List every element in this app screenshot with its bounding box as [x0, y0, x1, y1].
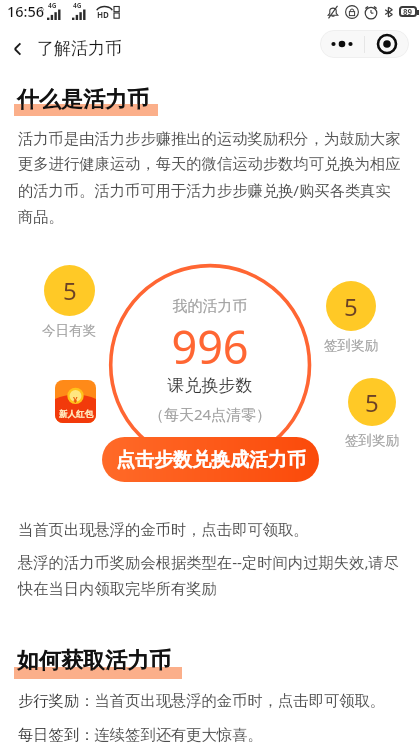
staticText: 我的活力币 — [0, 297, 420, 316]
staticText: 点击步数兑换成活力币 — [116, 448, 306, 472]
staticText: 4G — [73, 1, 82, 10]
staticText: 5 — [365, 386, 379, 419]
button[interactable]: 5 — [44, 265, 95, 316]
other: Back — [8, 39, 28, 59]
staticText: 16:56 — [7, 1, 45, 21]
staticText: （每天24点清零） — [0, 404, 420, 424]
staticText: 如何获取活力币 — [17, 647, 171, 675]
staticText: ¥ — [73, 394, 78, 405]
staticText: 活力币是由活力步步赚推出的运动奖励积分，为鼓励大家更多进行健康运动，每天的微信运… — [18, 129, 402, 227]
staticText: HD — [97, 9, 109, 20]
button[interactable]: More — [320, 30, 364, 58]
button[interactable]: 5 — [348, 378, 396, 426]
staticText: 签到奖励 — [345, 432, 399, 449]
staticText: 什么是活力币 — [17, 86, 149, 114]
staticText: 签到奖励 — [324, 337, 378, 354]
staticText: 了解活力币 — [37, 38, 122, 59]
staticText: 5 — [344, 290, 358, 323]
staticText: 悬浮的活力币奖励会根据类型在--定时间内过期失效,请尽快在当日内领取完毕所有奖励 — [18, 552, 402, 599]
staticText: 课兑换步数 — [0, 375, 420, 396]
staticText: 什么是活力币 — [17, 86, 149, 114]
staticText: 当首页出现悬浮的金币时，点击即可领取。 — [18, 520, 309, 539]
staticText: 5 — [63, 274, 77, 307]
staticText: 每日签到：连续签到还有更大惊喜。 — [18, 725, 263, 744]
button[interactable]: 点击步数兑换成活力币 — [102, 437, 319, 482]
button[interactable]: Close — [365, 30, 409, 58]
staticText: 步行奖励：当首页出现悬浮的金币时，点击即可领取。 — [18, 691, 386, 710]
staticText: 89 — [403, 6, 413, 17]
button[interactable]: Back — [0, 38, 130, 70]
button[interactable]: 新人红包 — [55, 380, 96, 423]
button[interactable]: 5 — [326, 281, 376, 331]
staticText: 4G — [48, 1, 57, 10]
staticText: 如何获取活力币 — [17, 647, 171, 675]
staticText: 新人红包 — [59, 409, 93, 420]
staticText: 今日有奖 — [42, 322, 96, 339]
staticText: 996 — [0, 316, 420, 377]
